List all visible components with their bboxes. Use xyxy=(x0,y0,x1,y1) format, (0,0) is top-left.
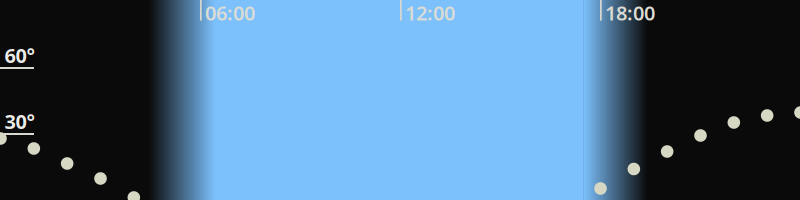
staticText: 60° xyxy=(4,42,34,69)
staticText: 30° xyxy=(4,108,34,135)
staticText: 12:00 xyxy=(405,0,455,26)
staticText: 18:00 xyxy=(605,0,655,26)
staticText: 06:00 xyxy=(205,0,255,26)
